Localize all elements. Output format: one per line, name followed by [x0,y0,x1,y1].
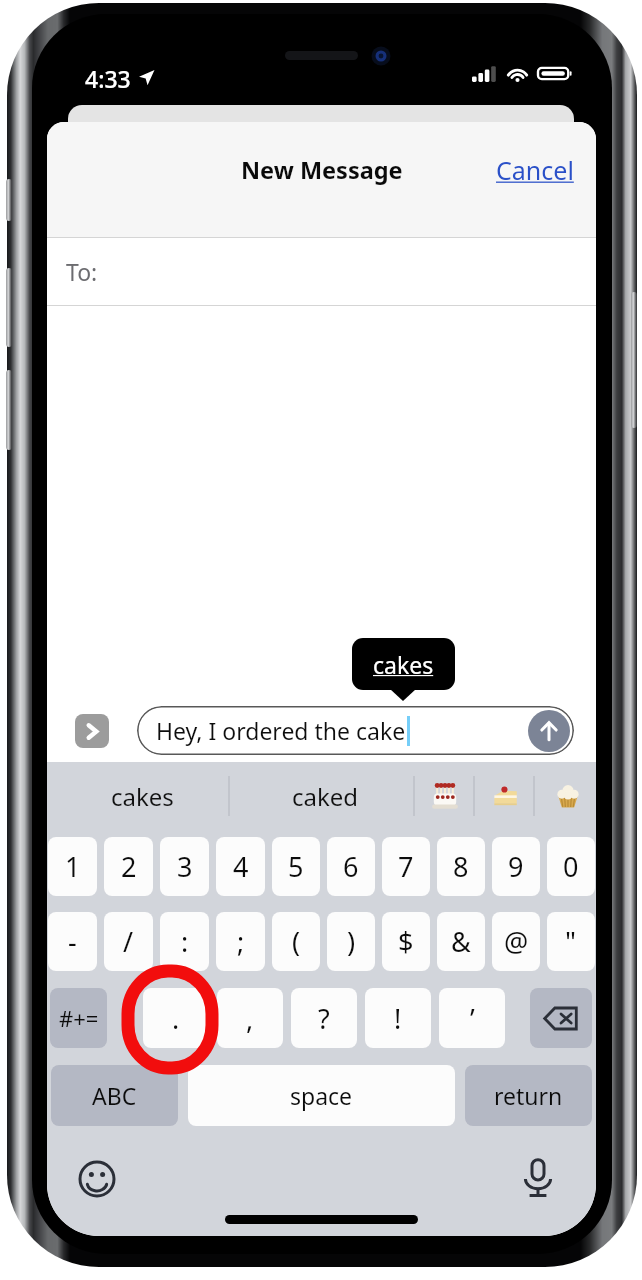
button[interactable]: Dictate [512,1153,564,1205]
staticText: ? [318,1000,330,1037]
staticText: ’ [470,1000,475,1037]
staticText: , [246,1000,254,1037]
button[interactable]: ! [365,988,431,1048]
staticText: 2 [121,848,137,885]
staticText: 0 [563,848,579,885]
staticText: & [451,923,471,960]
button[interactable]: $ [382,912,430,971]
staticText: cakes [373,649,434,680]
button[interactable]: " [547,912,595,971]
button[interactable]: #+= [50,988,107,1048]
button[interactable] [477,762,533,830]
button[interactable]: Hey, I ordered the cake [137,706,574,755]
button[interactable]: 6 [327,837,375,896]
staticText: 8 [453,848,469,885]
staticText: ( [292,923,301,960]
staticText: 9 [508,848,524,885]
button[interactable]: 7 [382,837,430,896]
staticText: 4 [233,848,249,885]
button[interactable]: 1 [48,837,97,896]
staticText: 1 [65,848,81,885]
button[interactable]: return [465,1065,592,1126]
staticText: $ [398,923,414,960]
button[interactable]: caked [239,762,411,830]
button[interactable]: / [104,912,153,971]
button[interactable]: , [217,988,283,1048]
button[interactable]: 5 [272,837,320,896]
staticText: space [290,1080,353,1111]
button[interactable]: 8 [437,837,485,896]
staticText: Hey, I ordered the cake [156,715,406,746]
button[interactable]: Emoji [71,1153,123,1205]
staticText: 5 [288,848,304,885]
staticText: " [565,923,577,960]
button[interactable]: . [143,988,209,1048]
button[interactable]: ; [216,912,265,971]
staticText: - [68,923,77,960]
staticText: #+= [59,1003,99,1033]
staticText: return [494,1080,563,1111]
button[interactable]: ? [291,988,357,1048]
staticText: 7 [398,848,414,885]
button[interactable]: space [188,1065,455,1126]
staticText: ) [347,923,356,960]
staticText: cakes [111,780,174,813]
staticText: 3 [177,848,193,885]
button[interactable] [417,762,473,830]
button[interactable] [540,762,596,830]
button[interactable]: Send [528,710,570,752]
staticText: ! [394,1000,402,1037]
staticText: : [181,923,189,960]
staticText: ; [237,923,245,960]
button[interactable]: : [160,912,209,971]
button[interactable]: Cancel [476,147,596,193]
staticText: Cancel [496,153,574,187]
button[interactable]: ABC [51,1065,178,1126]
staticText: caked [292,780,359,813]
button[interactable]: Backspace [530,988,592,1048]
button[interactable]: cakes [56,762,228,830]
button[interactable]: 2 [104,837,153,896]
staticText: New Message [241,154,403,186]
button[interactable]: & [437,912,485,971]
button[interactable]: 4 [216,837,265,896]
staticText: ABC [92,1080,137,1111]
button[interactable]: Show apps [75,714,109,748]
staticText: . [172,1000,180,1037]
staticText: To: [66,256,98,287]
staticText: / [123,923,134,960]
button[interactable]: ) [327,912,375,971]
button[interactable]: 3 [160,837,209,896]
button[interactable]: - [48,912,97,971]
button[interactable]: 0 [547,837,595,896]
button[interactable]: 9 [492,837,540,896]
staticText: @ [504,923,529,960]
button[interactable]: @ [492,912,540,971]
staticText: 4:33 [85,63,131,94]
staticText: 6 [343,848,359,885]
button[interactable]: ’ [439,988,505,1048]
button[interactable]: ( [272,912,320,971]
